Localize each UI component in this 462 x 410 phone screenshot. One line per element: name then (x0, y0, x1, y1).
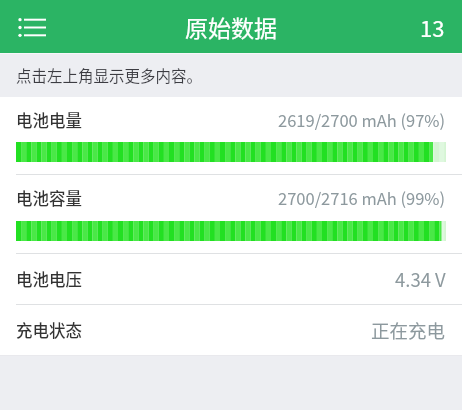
staticText: 电池电量 (16, 108, 82, 132)
staticText: 原始数据 (185, 10, 277, 43)
staticText: 2700/2716 mAh (99%) (278, 186, 446, 210)
staticText: 电池电压 (16, 267, 82, 291)
staticText: 4.34 V (395, 266, 446, 293)
staticText: 点击左上角显示更多内容。 (16, 64, 203, 86)
button[interactable]: 电池电量 (0, 97, 462, 175)
staticText: 正在充电 (371, 317, 446, 344)
button[interactable]: 电池电压 (0, 254, 462, 304)
staticText: 电池容量 (16, 186, 82, 210)
button[interactable]: Menu (9, 4, 55, 50)
button[interactable]: 充电状态 (0, 305, 462, 355)
staticText: 2619/2700 mAh (97%) (278, 108, 446, 132)
staticText: 13 (420, 11, 445, 43)
staticText: 充电状态 (16, 318, 82, 342)
button[interactable]: 电池容量 (0, 175, 462, 254)
